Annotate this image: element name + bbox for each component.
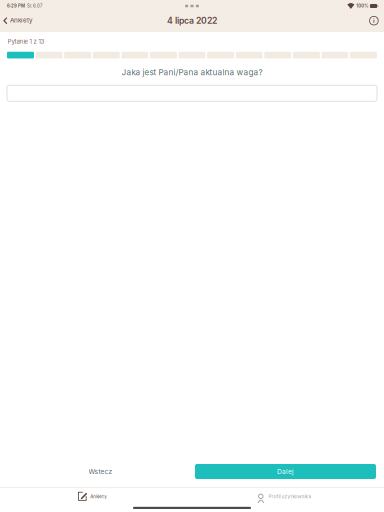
button[interactable]: Profil użytkownika <box>251 489 317 503</box>
staticText: Jaka jest Pani/Pana aktualna waga? <box>121 67 262 77</box>
staticText: Śr. 6.07 <box>25 3 42 9</box>
staticText: Wstecz <box>88 467 112 476</box>
staticText: Dalej <box>277 467 294 476</box>
staticText: 100% <box>354 3 368 8</box>
button[interactable]: Dalej <box>195 464 376 479</box>
staticText: 4 lipca 2022 <box>167 15 217 26</box>
staticText: Ankiety <box>10 16 33 24</box>
button[interactable]: Information <box>364 11 384 31</box>
button[interactable]: Ankiety <box>72 489 113 503</box>
staticText: Pytanie 1 z 13 <box>7 38 44 45</box>
button[interactable]: Wstecz <box>10 464 191 479</box>
staticText: Ankiety <box>90 494 107 499</box>
staticText: Profil użytkownika <box>268 494 311 499</box>
staticText: 6:29 PM <box>7 3 25 9</box>
button[interactable]: Ankiety <box>0 11 39 31</box>
